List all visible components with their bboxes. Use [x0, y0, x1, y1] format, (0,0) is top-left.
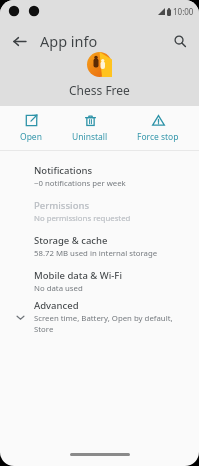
button[interactable]: Back [0, 22, 38, 60]
staticText: Advanced [34, 299, 79, 312]
staticText: Mobile data & Wi-Fi [34, 269, 122, 282]
staticText: No permissions requested [34, 213, 131, 224]
staticText: Chess Free [69, 82, 130, 98]
staticText: 58.72 MB used in internal storage [34, 248, 158, 259]
button[interactable]: Open [10, 110, 52, 147]
staticText: No data used [34, 283, 83, 294]
staticText: Uninstall [72, 131, 108, 143]
staticText: App info [40, 31, 98, 51]
staticText: Force stop [137, 131, 179, 143]
button[interactable]: Uninstall [62, 110, 118, 147]
button[interactable]: Search [161, 22, 199, 60]
staticText: Open [20, 131, 42, 143]
staticText: Screen time, Battery, Open by default, S… [34, 313, 187, 334]
staticText: 10:00 [173, 6, 194, 17]
button[interactable]: Force stop [127, 110, 189, 147]
staticText: Notifications [34, 164, 93, 177]
button[interactable]: Storage & cache [0, 229, 199, 264]
button[interactable]: Advanced [0, 299, 199, 334]
button[interactable]: Notifications [0, 159, 199, 194]
staticText: ~0 notifications per week [34, 178, 126, 189]
staticText: Storage & cache [34, 234, 108, 247]
staticText: Permissions [34, 199, 90, 212]
button[interactable]: Mobile data & Wi-Fi [0, 264, 199, 299]
button[interactable]: Permissions [0, 194, 199, 229]
